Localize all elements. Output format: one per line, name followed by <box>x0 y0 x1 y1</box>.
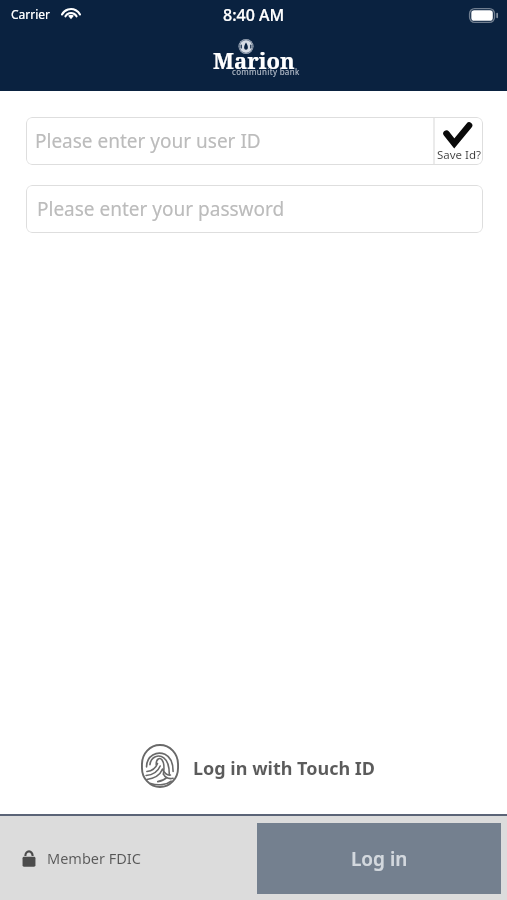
button[interactable]: Log in <box>257 823 501 894</box>
staticText: community bank <box>232 66 300 77</box>
staticText: Member FDIC <box>47 848 141 868</box>
staticText: 8:40 AM <box>223 4 285 26</box>
staticText: Save Id? <box>437 147 482 163</box>
staticText: Carrier <box>11 6 51 22</box>
staticText: Marion <box>213 45 295 75</box>
staticText: Log in <box>351 846 408 872</box>
button[interactable]: Member FDIC <box>22 848 141 868</box>
staticText: Please enter your password <box>37 196 285 222</box>
button[interactable]: Please enter your password <box>26 185 483 233</box>
staticText: Please enter your user ID <box>35 128 261 154</box>
staticText: Log in with Touch ID <box>193 756 376 781</box>
button[interactable]: Save Id <box>434 117 483 165</box>
button[interactable]: Please enter your user ID <box>26 117 434 165</box>
button[interactable]: Log in with Touch ID <box>141 744 376 788</box>
